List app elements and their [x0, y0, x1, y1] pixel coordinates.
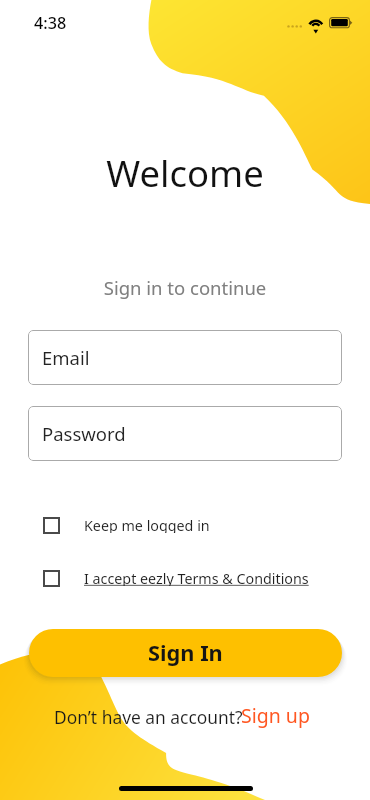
button[interactable]: Sign up [241, 702, 310, 729]
button[interactable]: Password [28, 406, 342, 461]
staticText: Don’t have an account? [54, 705, 243, 729]
button[interactable]: Keep me logged in [43, 517, 210, 534]
staticText: Sign in to continue [0, 275, 370, 300]
staticText: Sign In [148, 638, 223, 668]
button[interactable]: Sign In [29, 629, 342, 677]
staticText: Welcome [0, 148, 370, 198]
staticText: 4:38 [34, 12, 67, 34]
staticText: Email [42, 345, 90, 370]
button[interactable]: Email [28, 330, 342, 385]
staticText: I accept eezly Terms & Conditions [84, 569, 309, 586]
staticText: Keep me logged in [84, 516, 210, 533]
button[interactable]: I accept eezly Terms & Conditions [43, 570, 309, 587]
staticText: Password [42, 421, 126, 446]
